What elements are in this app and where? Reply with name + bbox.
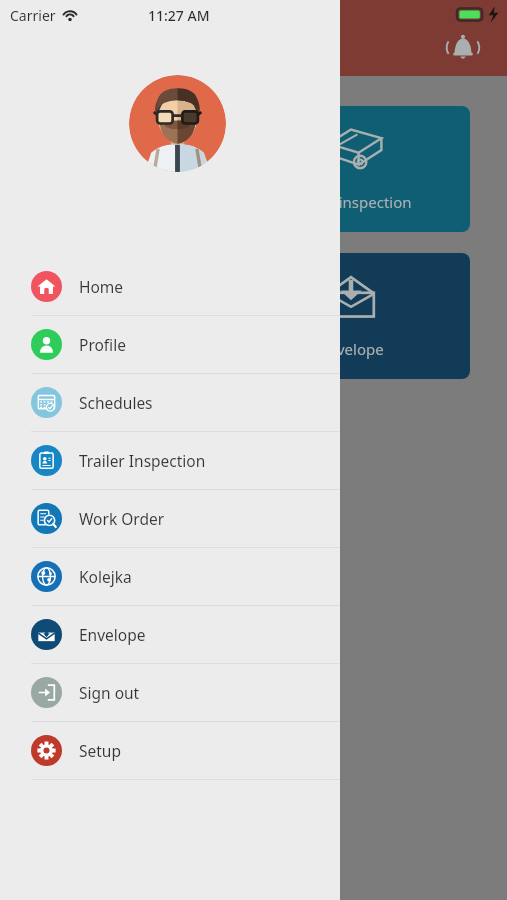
button[interactable]: Work Order <box>0 490 340 547</box>
button[interactable]: Envelope <box>232 253 470 379</box>
staticText: Setup <box>79 740 121 761</box>
button[interactable]: Home <box>0 258 340 315</box>
button[interactable]: Profile <box>0 316 340 373</box>
button[interactable]: Trailer Inspection <box>0 432 340 489</box>
staticText: Schedules <box>79 392 153 413</box>
staticText: Sign out <box>79 682 140 703</box>
button[interactable]: Sign out <box>0 664 340 721</box>
staticText: Trailer Inspection <box>79 450 206 471</box>
staticText: Envelope <box>79 624 146 645</box>
button[interactable]: Setup <box>0 722 340 779</box>
staticText: Kolejka <box>79 566 132 587</box>
staticText: Envelope <box>319 339 384 359</box>
button[interactable]: Trailer inspection <box>232 106 470 232</box>
staticText: Trailer inspection <box>290 192 412 212</box>
button[interactable]: Schedules <box>0 374 340 431</box>
staticText: Work Order <box>79 508 165 529</box>
staticText: Profile <box>79 334 126 355</box>
staticText: Home <box>79 276 124 297</box>
button[interactable]: Kolejka <box>0 548 340 605</box>
button[interactable]: Envelope <box>0 606 340 663</box>
button[interactable]: Notifications <box>441 26 485 70</box>
staticText: Carrier <box>10 6 56 25</box>
staticText: 11:27 AM <box>148 6 210 25</box>
